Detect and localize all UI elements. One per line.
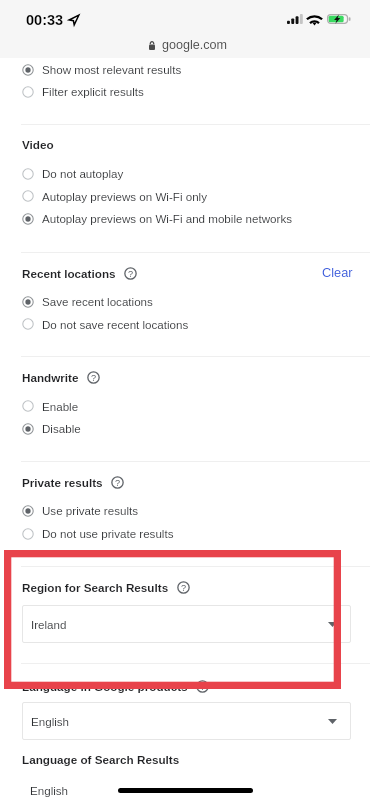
button[interactable] <box>0 184 370 208</box>
staticText: Do not save recent locations <box>42 318 189 331</box>
staticText: ? <box>181 583 187 593</box>
staticText: Recent locations <box>22 267 116 280</box>
staticText: Do not use private results <box>42 527 174 540</box>
button[interactable] <box>0 522 370 546</box>
staticText: Autoplay previews on Wi-Fi only <box>42 190 207 203</box>
button[interactable] <box>0 290 370 314</box>
other: Help <box>196 680 209 693</box>
staticText: Video <box>22 138 54 151</box>
button[interactable] <box>0 207 370 231</box>
button[interactable] <box>0 499 370 523</box>
button[interactable]: English <box>22 702 351 740</box>
staticText: ? <box>115 478 121 488</box>
staticText: Clear <box>322 265 353 279</box>
staticText: Ireland <box>31 618 67 631</box>
staticText: google.com <box>162 38 228 52</box>
staticText: English <box>31 715 70 728</box>
staticText: Save recent locations <box>42 295 153 308</box>
staticText: 00:33 <box>26 12 64 28</box>
staticText: ? <box>200 682 206 692</box>
button[interactable] <box>0 80 370 104</box>
other: Help <box>124 267 137 280</box>
staticText: English <box>30 784 69 797</box>
staticText: Use private results <box>42 504 139 517</box>
staticText: Autoplay previews on Wi-Fi and mobile ne… <box>42 212 293 225</box>
staticText: Handwrite <box>22 371 79 384</box>
staticText: ? <box>128 269 134 279</box>
button[interactable] <box>0 417 370 441</box>
staticText: Enable <box>42 400 79 413</box>
other: Help <box>111 476 124 489</box>
staticText: ? <box>91 373 97 383</box>
other: Help <box>87 371 100 384</box>
button[interactable] <box>0 394 370 418</box>
staticText: Region for Search Results <box>22 581 169 594</box>
button[interactable]: Ireland <box>22 605 351 643</box>
staticText: Do not autoplay <box>42 167 124 180</box>
staticText: Language in Google products <box>22 680 188 693</box>
button[interactable] <box>0 162 370 186</box>
staticText: Private results <box>22 476 103 489</box>
staticText: Language of Search Results <box>22 753 180 766</box>
other: Help <box>177 581 190 594</box>
staticText: Filter explicit results <box>42 85 144 98</box>
button[interactable] <box>0 312 370 336</box>
button[interactable]: Clear <box>318 262 358 282</box>
staticText: Disable <box>42 422 81 435</box>
button[interactable] <box>0 58 370 82</box>
staticText: Show most relevant results <box>42 63 182 76</box>
